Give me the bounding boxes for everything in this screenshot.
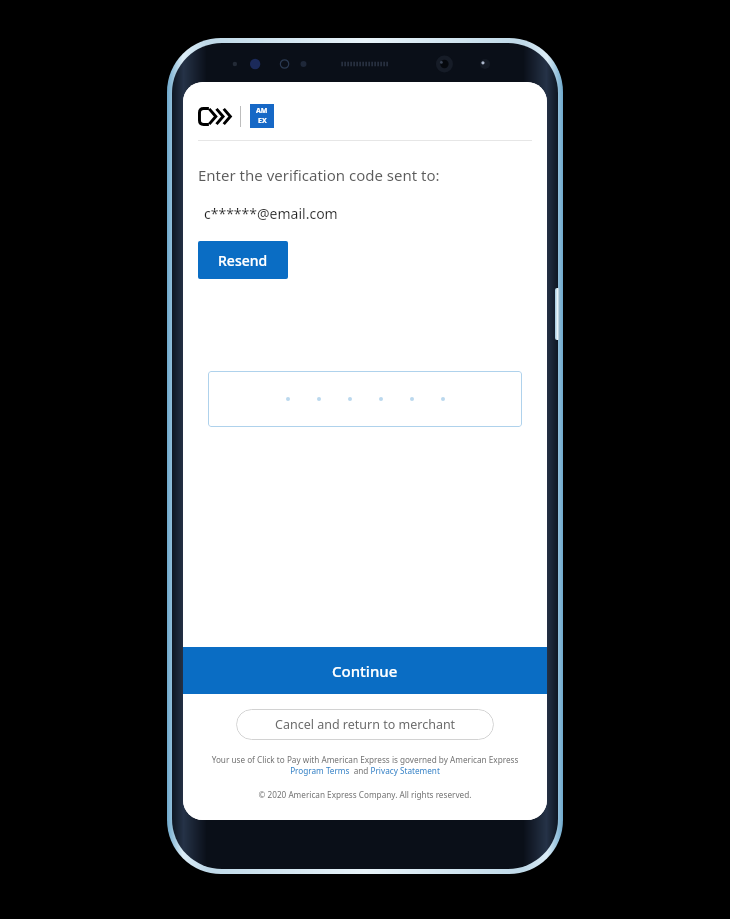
staticText: c******@email.com bbox=[204, 204, 338, 223]
staticText: Resend bbox=[218, 251, 268, 270]
button[interactable]: Continue bbox=[183, 647, 547, 694]
staticText: Enter the verification code sent to: bbox=[198, 165, 440, 185]
button[interactable]: Resend bbox=[198, 241, 288, 279]
staticText: Cancel and return to merchant bbox=[275, 716, 456, 733]
staticText: Continue bbox=[332, 661, 398, 681]
staticText: Your use of Click to Pay with American E… bbox=[197, 754, 533, 776]
staticText: EX bbox=[258, 116, 267, 126]
staticText: © 2020 American Express Company. All rig… bbox=[183, 789, 547, 800]
button[interactable]: Verification code input bbox=[208, 371, 522, 427]
button[interactable]: Cancel and return to merchant bbox=[236, 709, 494, 740]
staticText: AM bbox=[256, 106, 268, 116]
